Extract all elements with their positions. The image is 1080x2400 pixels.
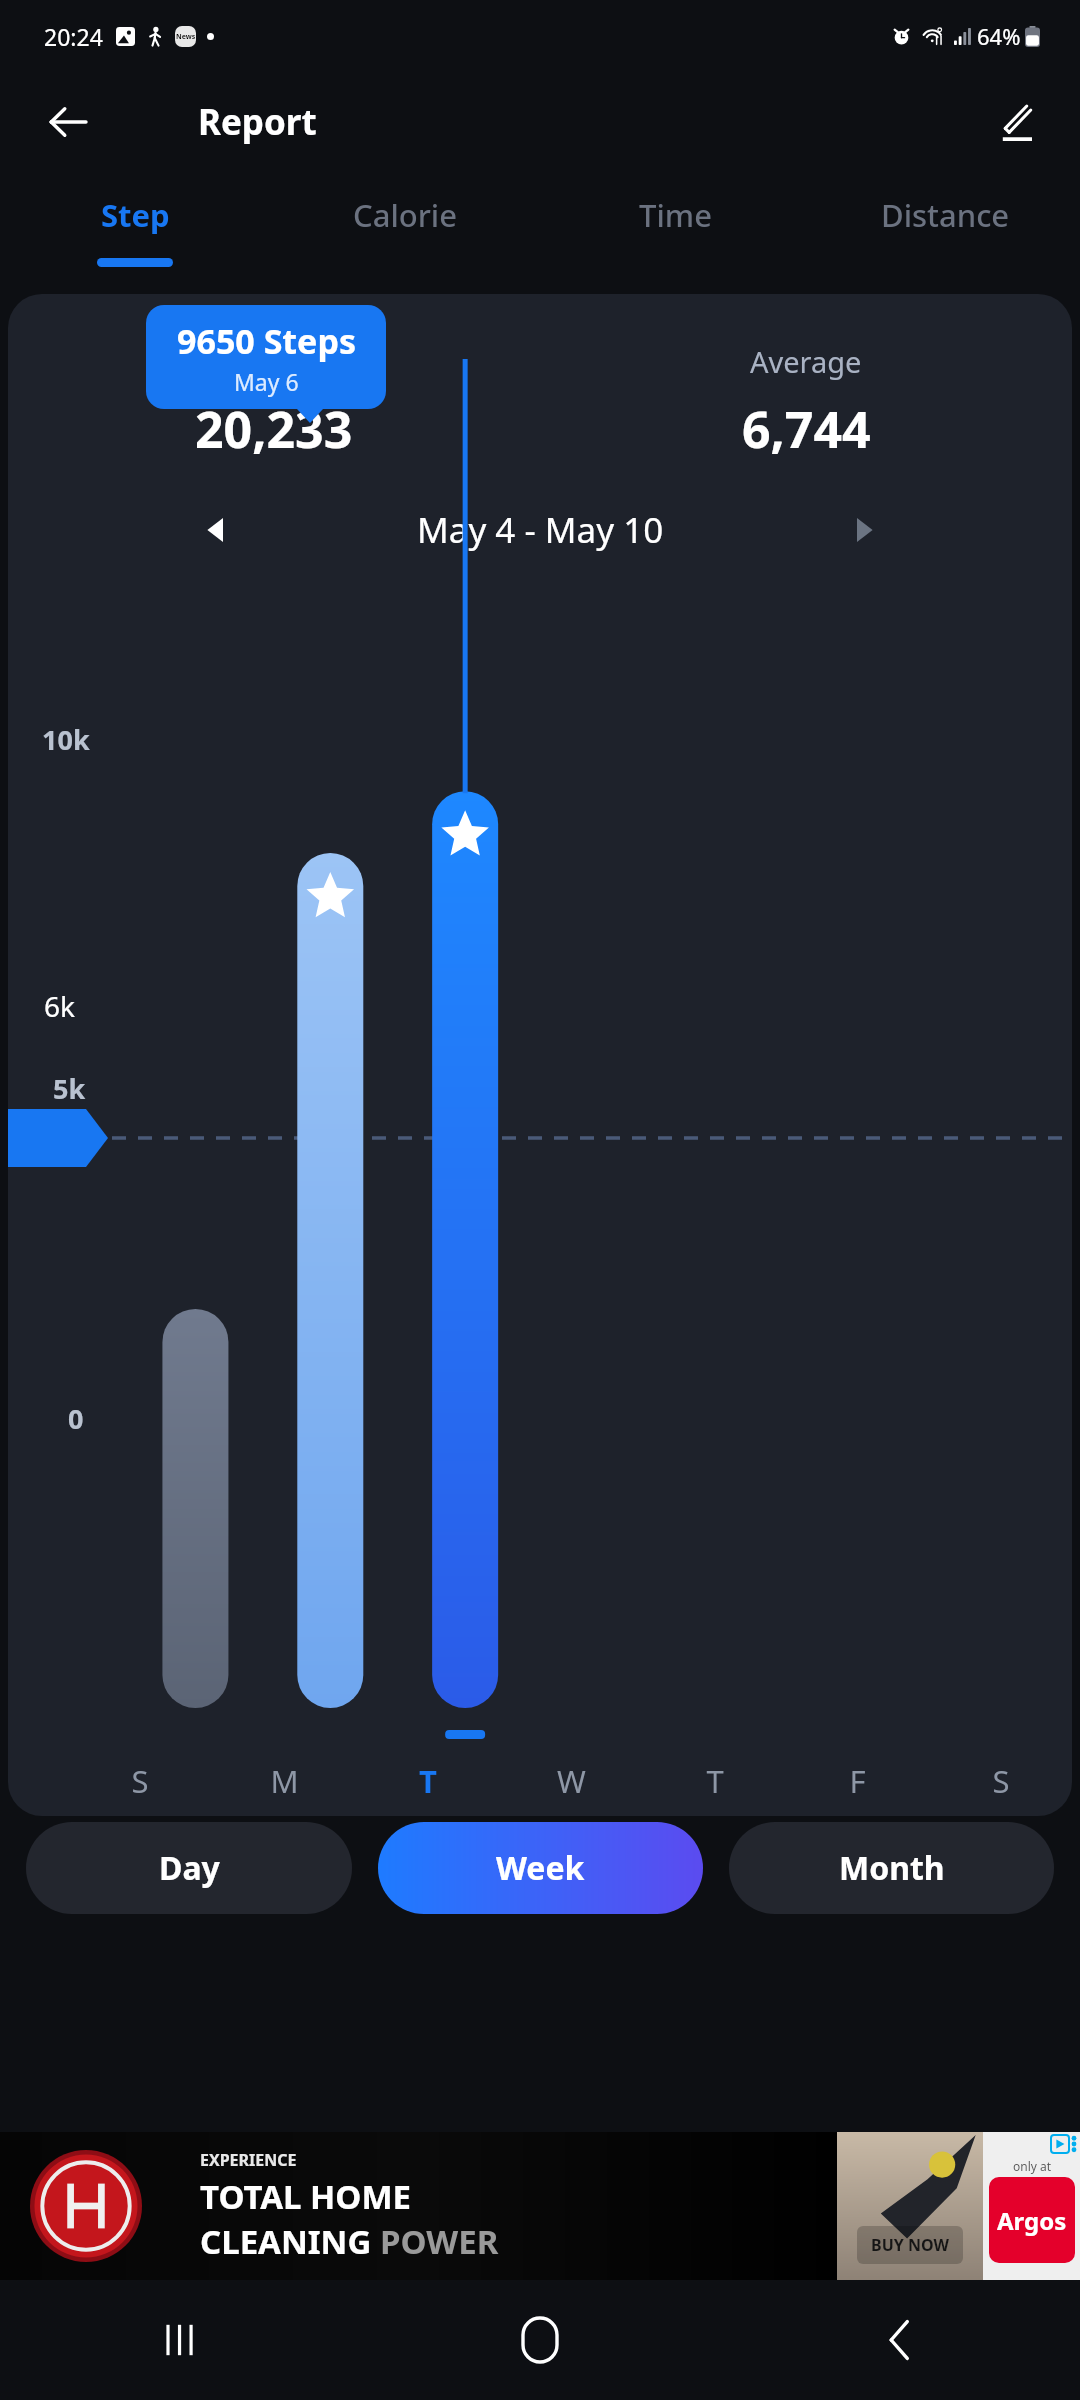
staticText: W — [557, 1760, 586, 1802]
staticText: S — [992, 1760, 1010, 1802]
staticText: 20,233 — [195, 395, 353, 463]
staticText: Calorie — [353, 194, 458, 236]
staticText: T — [706, 1760, 724, 1802]
button[interactable]: Month — [729, 1822, 1054, 1914]
staticText: Report — [198, 98, 317, 146]
button[interactable]: S — [929, 1760, 1072, 1802]
staticText: 9650 Steps — [177, 318, 356, 364]
staticText: S — [131, 1760, 149, 1802]
button[interactable]: Back — [30, 84, 106, 160]
staticText: 0 — [68, 1400, 84, 1437]
staticText: 6k — [44, 987, 75, 1025]
staticText: Average — [750, 342, 862, 381]
button[interactable]: Edit — [976, 84, 1052, 160]
button[interactable]: Next week — [832, 499, 894, 561]
button[interactable]: M — [212, 1760, 356, 1802]
staticText: Month — [839, 1846, 945, 1890]
staticText: Day — [159, 1846, 220, 1890]
staticText: Distance — [881, 194, 1010, 236]
staticText: 6,744 — [742, 395, 871, 463]
staticText: only at — [1013, 2158, 1052, 2174]
button[interactable]: T — [356, 1760, 500, 1802]
staticText: TOTAL HOME — [200, 2174, 412, 2219]
button[interactable]: Recent apps — [0, 2280, 360, 2400]
staticText: F — [849, 1760, 866, 1802]
staticText: CLEANING — [200, 2219, 380, 2264]
staticText: 20:24 — [44, 21, 103, 52]
staticText: Step — [101, 194, 170, 236]
button[interactable]: F — [786, 1760, 929, 1802]
button[interactable]: Step — [0, 172, 270, 292]
button[interactable]: Distance — [810, 172, 1080, 292]
button[interactable]: Week — [378, 1822, 703, 1914]
staticText: Week — [496, 1846, 585, 1890]
button[interactable]: Home — [360, 2280, 720, 2400]
button[interactable]: T — [643, 1760, 786, 1802]
button[interactable]: 9650 Steps — [146, 305, 386, 409]
staticText: 64% — [977, 21, 1021, 51]
staticText: May 4 - May 10 — [417, 506, 664, 554]
button[interactable]: Calorie — [270, 172, 540, 292]
staticText: News — [176, 32, 196, 42]
staticText: 10k — [42, 721, 90, 758]
staticText: Time — [639, 194, 712, 236]
staticText: T — [419, 1760, 437, 1802]
staticText: BUY NOW — [871, 2234, 949, 2256]
staticText: POWER — [380, 2219, 499, 2264]
button[interactable]: S — [68, 1760, 212, 1802]
staticText: M — [270, 1760, 299, 1802]
staticText: May 6 — [234, 366, 299, 397]
button[interactable]: Day — [26, 1822, 352, 1914]
staticText: Total — [241, 342, 307, 381]
button[interactable]: Advertisement — [0, 2132, 1080, 2280]
staticText: Argos — [997, 2204, 1067, 2237]
button[interactable]: W — [500, 1760, 643, 1802]
staticText: 5k — [53, 1070, 86, 1107]
button[interactable]: Time — [540, 172, 810, 292]
staticText: EXPERIENCE — [200, 2149, 297, 2171]
button[interactable]: Back — [720, 2280, 1080, 2400]
button[interactable]: Previous week — [186, 499, 248, 561]
